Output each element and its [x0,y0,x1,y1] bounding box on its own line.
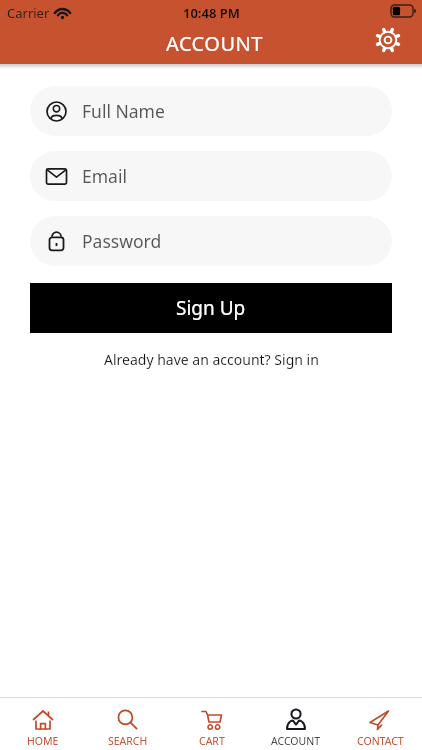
button[interactable]: ACCOUNT [254,698,338,750]
staticText: ACCOUNT [166,30,263,57]
button[interactable]: Sign Up [30,283,392,333]
staticText: Password [82,229,162,253]
button[interactable]: Email [30,151,392,201]
staticText: Sign Up [176,295,246,321]
button[interactable] [375,27,401,53]
staticText: CONTACT [357,734,404,748]
staticText: Email [82,164,127,188]
staticText: HOME [27,734,59,748]
staticText: 10:48 PM [183,4,240,22]
button[interactable]: Already have an account? Sign in [30,350,392,369]
staticText: Already have an account? Sign in [104,350,319,369]
staticText: Full Name [82,99,165,123]
button[interactable]: HOME [0,698,85,750]
button[interactable]: Full Name [30,86,392,136]
button[interactable]: Password [30,216,392,266]
staticText: Carrier [7,4,50,22]
staticText: SEARCH [108,734,148,748]
button[interactable]: SEARCH [85,698,170,750]
button[interactable]: CART [170,698,254,750]
staticText: CART [199,734,225,748]
button[interactable]: CONTACT [338,698,422,750]
staticText: ACCOUNT [271,734,321,748]
